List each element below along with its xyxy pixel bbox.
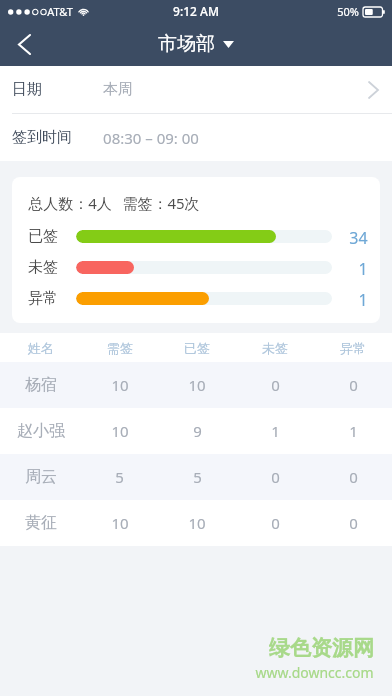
button[interactable]: 赵小强 [0,408,392,454]
staticText: 签到时间 [12,128,72,147]
staticText: AT&T [47,4,73,19]
staticText: 杨宿 [25,375,57,395]
staticText: 5 [193,467,202,487]
staticText: 已签 [184,340,210,356]
staticText: 异常 [340,340,366,356]
button[interactable]: 周云 [0,454,392,500]
button[interactable]: 签到时间 [0,114,392,161]
staticText: 10 [111,375,129,395]
staticText: 0 [349,375,358,395]
staticText: 1 [349,421,358,441]
staticText: 周云 [25,467,57,487]
button[interactable]: 黄征 [0,500,392,546]
staticText: 10 [188,375,206,395]
button[interactable]: 杨宿 [0,362,392,408]
staticText: 10 [111,513,129,533]
staticText: 姓名 [28,340,54,356]
staticText: 0 [271,467,280,487]
button[interactable]: 市场部 [158,32,234,56]
staticText: 34 [349,227,368,245]
staticText: 9 [193,421,202,441]
staticText: 未签 [262,340,288,356]
staticText: 08:30 – 09: 00 [103,128,199,148]
staticText: 需签 [107,340,133,356]
staticText: 需签：45次 [122,193,200,213]
staticText: 5 [115,467,124,487]
staticText: 0 [349,513,358,533]
staticText: 黄征 [25,513,57,533]
staticText: 绿色资源网 [269,635,374,661]
staticText: 9:12 AM [173,3,219,19]
staticText: 已签 [28,227,58,245]
staticText: 1 [358,258,368,276]
staticText: 1 [271,421,280,441]
staticText: 1 [358,289,368,307]
staticText: 总人数：4人 [28,193,112,213]
staticText: 10 [188,513,206,533]
staticText: www.downcc.com [255,663,374,682]
staticText: 本周 [103,80,133,99]
staticText: 市场部 [158,32,215,56]
staticText: 50% [337,4,359,19]
staticText: 日期 [12,80,42,99]
staticText: 赵小强 [17,421,65,441]
staticText: 未签 [28,258,58,276]
staticText: 0 [349,467,358,487]
staticText: 0 [271,375,280,395]
button[interactable]: 日期 [0,66,392,113]
staticText: 异常 [28,289,58,307]
staticText: 10 [111,421,129,441]
button[interactable]: Back [0,22,48,66]
staticText: 0 [271,513,280,533]
